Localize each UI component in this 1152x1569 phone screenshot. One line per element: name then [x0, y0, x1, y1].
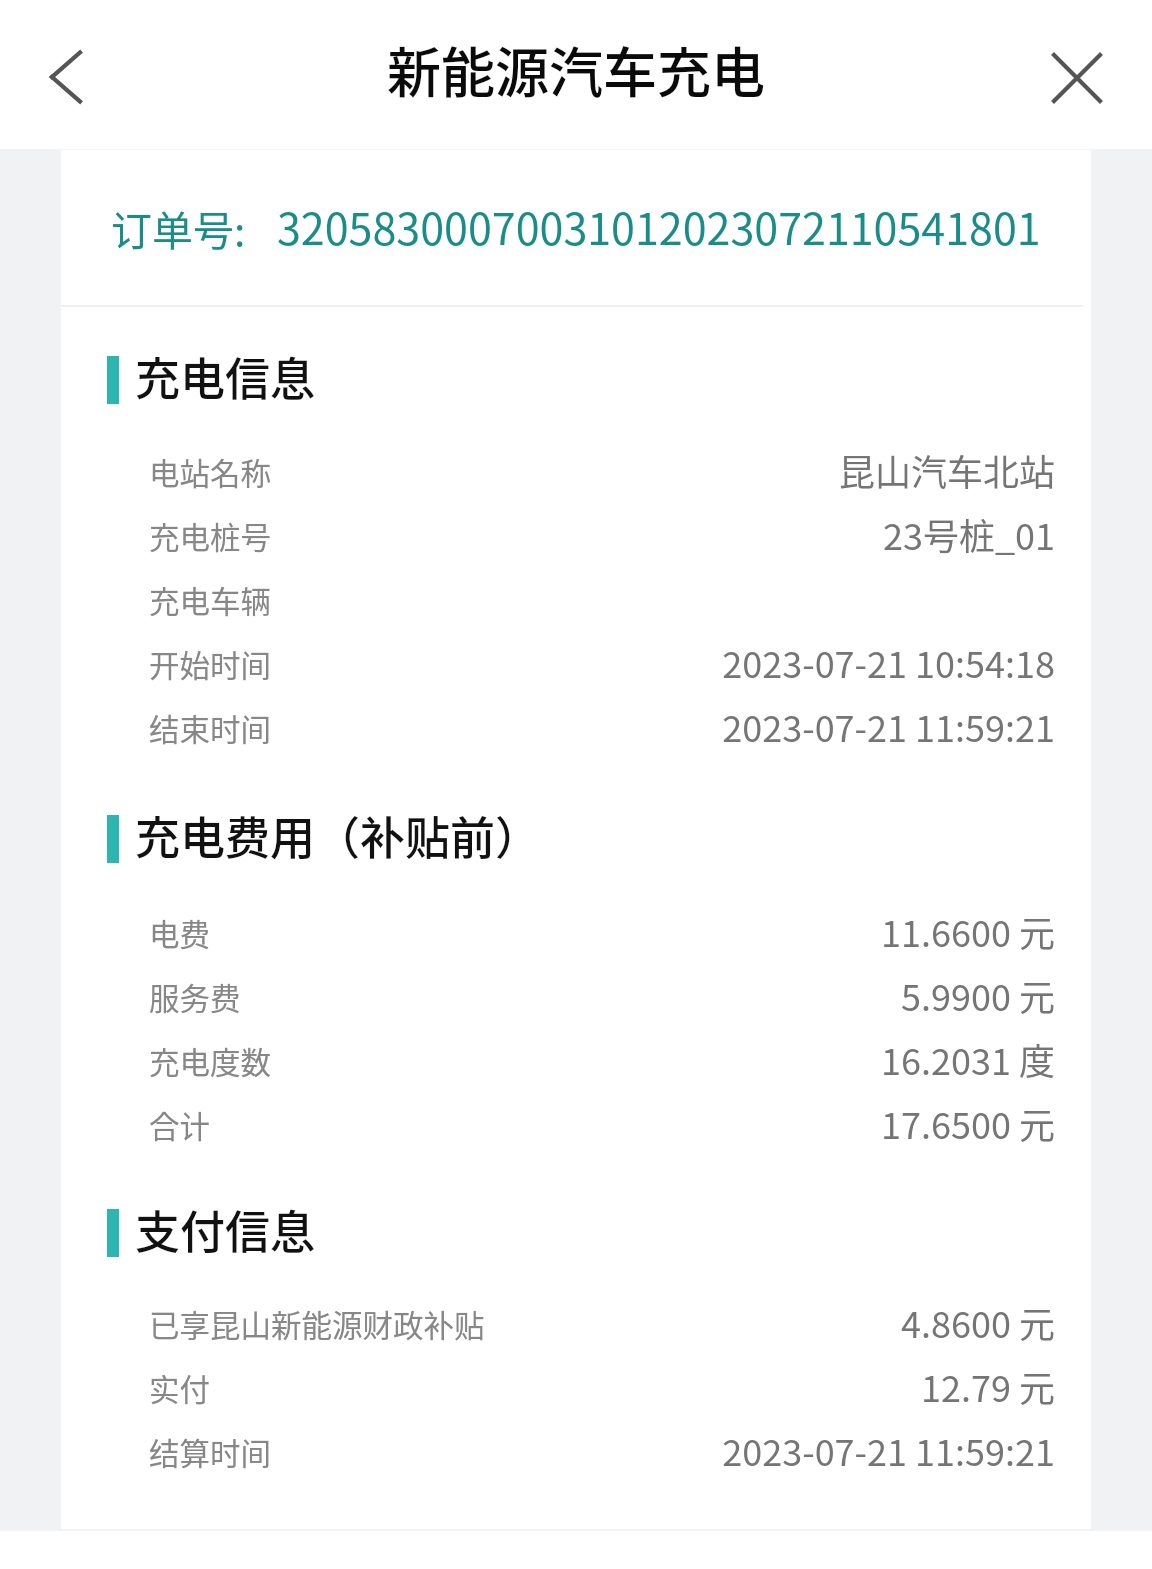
staticText: 订单号:: [111, 198, 246, 257]
button[interactable]: Close: [1052, 53, 1102, 103]
staticText: 开始时间: [149, 642, 271, 686]
staticText: 已享昆山新能源财政补贴: [149, 1302, 485, 1346]
staticText: 充电费用（补贴前）: [135, 803, 541, 868]
staticText: 充电车辆: [149, 578, 271, 622]
staticText: 充电度数: [149, 1039, 271, 1083]
staticText: 5.9900 元: [901, 969, 1055, 1021]
staticText: 结算时间: [149, 1430, 271, 1474]
staticText: 12.79 元: [921, 1360, 1055, 1412]
button[interactable]: 开始时间: [61, 632, 1091, 696]
staticText: 新能源汽车充电: [387, 30, 765, 108]
button[interactable]: 服务费: [61, 965, 1091, 1029]
staticText: 充电信息: [135, 344, 316, 409]
button[interactable]: 已享昆山新能源财政补贴: [61, 1292, 1091, 1356]
staticText: 17.6500 元: [881, 1097, 1055, 1149]
staticText: 2023-07-21 11:59:21: [722, 700, 1055, 752]
button[interactable]: 充电车辆: [61, 568, 1091, 632]
staticText: 2023-07-21 10:54:18: [722, 636, 1055, 688]
button[interactable]: Back: [22, 33, 110, 121]
button[interactable]: 结束时间: [61, 696, 1091, 760]
staticText: 充电桩号: [149, 514, 271, 558]
button[interactable]: 充电桩号: [61, 504, 1091, 568]
button[interactable]: 电费: [61, 901, 1091, 965]
staticText: 昆山汽车北站: [838, 444, 1055, 496]
staticText: 23号桩_01: [882, 508, 1055, 560]
button[interactable]: 订单号:: [61, 150, 1091, 305]
staticText: 11.6600 元: [881, 905, 1055, 957]
button[interactable]: 电站名称: [61, 440, 1091, 504]
staticText: 32058300070031012023072110541801: [277, 195, 1041, 257]
button[interactable]: 合计: [61, 1093, 1091, 1157]
staticText: 支付信息: [135, 1197, 316, 1262]
staticText: 结束时间: [149, 706, 271, 750]
staticText: 服务费: [149, 975, 241, 1019]
staticText: 4.8600 元: [901, 1296, 1055, 1348]
staticText: 实付: [149, 1366, 210, 1410]
staticText: 电站名称: [149, 450, 271, 494]
staticText: 2023-07-21 11:59:21: [722, 1424, 1055, 1476]
staticText: 电费: [149, 911, 210, 955]
staticText: 合计: [149, 1103, 210, 1147]
button[interactable]: 结算时间: [61, 1420, 1091, 1484]
button[interactable]: 实付: [61, 1356, 1091, 1420]
button[interactable]: 充电度数: [61, 1029, 1091, 1093]
staticText: 16.2031 度: [881, 1033, 1055, 1085]
